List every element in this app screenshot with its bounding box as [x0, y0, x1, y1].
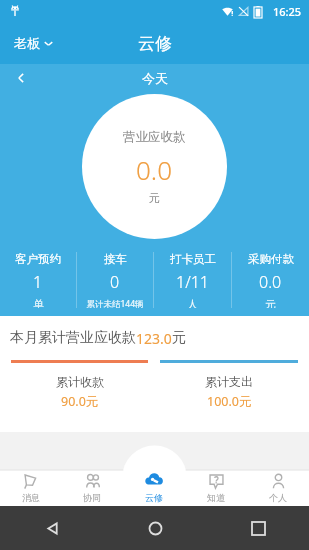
button[interactable]: Back [37, 513, 67, 543]
staticText: 采购付款 [248, 252, 294, 266]
staticText: 累计未结144辆 [86, 298, 144, 308]
staticText: 接车 [104, 252, 127, 266]
staticText: 客户预约 [15, 252, 61, 266]
staticText: 打卡员工 [170, 252, 216, 266]
staticText: 消息 [22, 492, 40, 503]
staticText: 0.0 [136, 152, 173, 187]
staticText: 人 [187, 298, 198, 308]
staticText: 累计支出 [205, 374, 253, 389]
staticText: 营业应收款 [123, 129, 186, 145]
button[interactable]: 累计收款 [11, 360, 148, 420]
button[interactable]: 营业应收款 [82, 94, 227, 239]
staticText: 本月累计营业应收款 [10, 329, 136, 347]
button[interactable]: 接车 [77, 246, 153, 314]
staticText: 1/11 [176, 271, 209, 293]
staticText: 知道 [207, 492, 225, 503]
staticText: 老板 [14, 35, 40, 51]
staticText: 1 [33, 271, 43, 293]
button[interactable]: 客户预约 [0, 246, 76, 314]
staticText: 0.0 [259, 271, 282, 293]
staticText: 云修 [138, 33, 172, 54]
button[interactable]: 打卡员工 [154, 246, 231, 314]
staticText: 元 [149, 191, 160, 205]
staticText: 100.0元 [207, 393, 252, 410]
button[interactable]: Previous day [8, 65, 34, 91]
staticText: 云修 [145, 492, 163, 503]
button[interactable]: 个人 [247, 466, 309, 506]
staticText: 协同 [83, 492, 101, 503]
staticText: 单 [33, 298, 44, 308]
staticText: 90.0元 [61, 393, 99, 410]
button[interactable]: Home [140, 513, 170, 543]
button[interactable]: 云修 [123, 466, 185, 506]
staticText: 元 [265, 298, 276, 308]
button[interactable]: 知道 [185, 466, 247, 506]
staticText: 累计收款 [56, 374, 104, 389]
button[interactable]: 协同 [61, 466, 123, 506]
button[interactable]: Recents [243, 513, 273, 543]
staticText: 元 [172, 329, 186, 347]
button[interactable]: 老板 [10, 31, 57, 55]
button[interactable]: 累计支出 [160, 360, 298, 420]
button[interactable]: 采购付款 [232, 246, 309, 314]
staticText: 0 [110, 271, 120, 293]
staticText: 123.0 [136, 329, 172, 348]
staticText: 16:25 [273, 4, 302, 19]
staticText: 个人 [269, 492, 287, 503]
button[interactable]: 消息 [0, 466, 61, 506]
staticText: 今天 [142, 70, 168, 86]
